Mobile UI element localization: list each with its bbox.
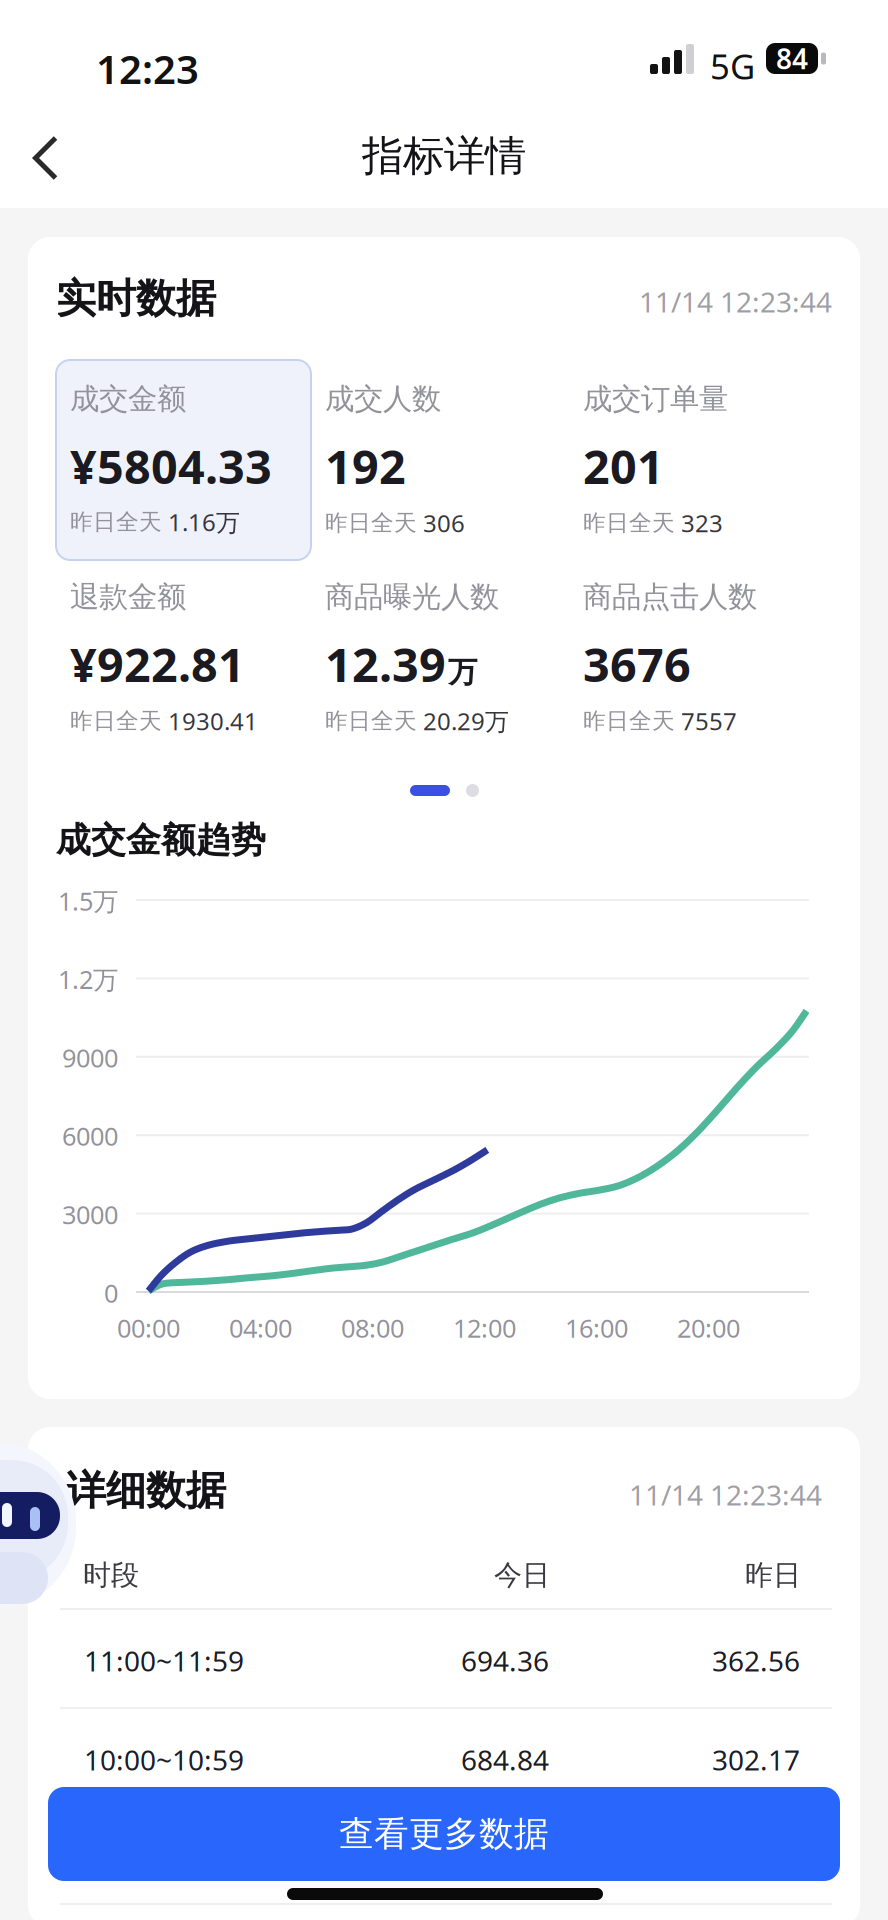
staticText: 昨日全天: [325, 509, 417, 537]
staticText: ¥5804.33: [70, 435, 272, 497]
staticText: 1.16万: [168, 506, 240, 538]
staticText: 20:00: [677, 1311, 740, 1345]
staticText: 684.84: [461, 1741, 549, 1778]
staticText: 查看更多数据: [339, 1813, 549, 1855]
staticText: 昨日全天: [70, 508, 162, 536]
staticText: 成交金额: [70, 381, 186, 417]
staticText: 04:00: [229, 1311, 292, 1345]
staticText: 昨日全天: [325, 707, 417, 735]
staticText: 指标详情: [362, 131, 526, 181]
button[interactable]: 商品曝光人数: [325, 579, 575, 739]
staticText: 306: [423, 507, 465, 539]
staticText: 11/14 12:23:44: [629, 1476, 822, 1513]
staticText: 00:00: [117, 1311, 180, 1345]
button[interactable]: 退款金额: [70, 579, 320, 739]
staticText: 时段: [83, 1558, 139, 1592]
button[interactable]: 成交订单量: [583, 381, 833, 541]
staticText: 694.36: [461, 1642, 549, 1679]
staticText: 5G: [710, 43, 755, 89]
staticText: 11/14 12:23:44: [639, 283, 832, 320]
staticText: 6000: [62, 1119, 118, 1153]
staticText: 11:00~11:59: [84, 1642, 244, 1679]
staticText: 今日: [494, 1558, 550, 1592]
staticText: 0: [104, 1276, 118, 1310]
staticText: 昨日全天: [583, 707, 675, 735]
staticText: 602.18: [461, 1840, 549, 1877]
staticText: 7557: [681, 705, 737, 737]
staticText: 1930.41: [168, 705, 258, 737]
staticText: 20.29万: [423, 705, 509, 737]
button[interactable]: 查看更多数据: [48, 1787, 840, 1881]
staticText: 1.5万: [58, 884, 118, 918]
staticText: 192: [325, 435, 406, 497]
staticText: 成交金额趋势: [56, 819, 266, 862]
staticText: 10:00~10:59: [84, 1741, 244, 1778]
staticText: 16:00: [565, 1311, 628, 1345]
staticText: 商品点击人数: [583, 579, 757, 615]
staticText: 84: [776, 40, 808, 77]
staticText: 08:00: [341, 1311, 404, 1345]
staticText: 323: [681, 507, 723, 539]
staticText: 商品曝光人数: [325, 579, 499, 615]
button[interactable]: 商品点击人数: [583, 579, 833, 739]
staticText: 万: [448, 654, 477, 690]
staticText: 实时数据: [56, 274, 216, 323]
staticText: 成交人数: [325, 381, 441, 417]
button[interactable]: Back: [6, 121, 84, 195]
staticText: 昨日: [745, 1558, 801, 1592]
staticText: 昨日全天: [583, 509, 675, 537]
staticText: 详细数据: [66, 1466, 226, 1515]
staticText: 362.56: [712, 1642, 800, 1679]
staticText: 201: [583, 435, 664, 497]
staticText: 成交订单量: [583, 381, 728, 417]
button[interactable]: 成交金额: [56, 360, 311, 560]
staticText: 1.2万: [58, 962, 118, 996]
staticText: 12:00: [453, 1311, 516, 1345]
staticText: 3000: [62, 1198, 118, 1231]
staticText: 9000: [62, 1041, 118, 1074]
staticText: ¥922.81: [70, 633, 245, 695]
button[interactable]: 成交人数: [325, 381, 575, 541]
staticText: 302.17: [712, 1741, 800, 1778]
staticText: 3676: [583, 633, 691, 695]
staticText: 12.39: [325, 633, 446, 695]
staticText: 昨日全天: [70, 707, 162, 735]
staticText: 退款金额: [70, 579, 186, 615]
staticText: 12:23: [96, 42, 199, 95]
